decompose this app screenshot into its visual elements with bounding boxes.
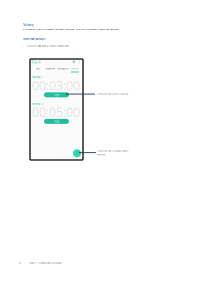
staticText: 1. [22, 44, 24, 47]
staticText: Таймер 2 [32, 102, 43, 105]
staticText: Таймер [71, 67, 78, 70]
button[interactable]: Пуск [44, 119, 69, 124]
staticText: Нажмите для установки нового [97, 149, 128, 152]
staticText: Глава 4: Приложения и функции [29, 261, 61, 264]
button[interactable]: Добавить таймер [73, 149, 81, 157]
staticText: 00:03:00 [32, 77, 80, 94]
staticText: Нажмите для запуска таймера [97, 92, 128, 95]
button[interactable]: Ещё [79, 60, 81, 64]
staticText: Установка таймера [23, 37, 45, 41]
button[interactable]: Секундомер [56, 67, 69, 72]
staticText: 00:05:00 [32, 103, 80, 121]
button[interactable]: Таймер [69, 67, 81, 72]
staticText: Clock [32, 60, 41, 64]
staticText: Таймер [23, 23, 34, 27]
button[interactable]: Пуск [44, 92, 69, 97]
staticText: Секундомер [57, 67, 68, 70]
staticText: В устройстве можно установить несколько … [23, 28, 119, 31]
staticText: таймера [97, 153, 105, 156]
staticText: Таймер 1 [32, 75, 43, 79]
button[interactable]: Будильник [44, 67, 56, 72]
staticText: Пуск [54, 93, 59, 97]
staticText: 52 [19, 261, 21, 264]
staticText: Нажмите Таймер на экране отображения. [26, 44, 69, 47]
staticText: Пуск [54, 120, 59, 123]
staticText: Часы [36, 67, 41, 70]
button[interactable]: Часы [32, 67, 44, 72]
staticText: Будильник [46, 67, 55, 70]
button[interactable]: Поиск [72, 60, 75, 64]
